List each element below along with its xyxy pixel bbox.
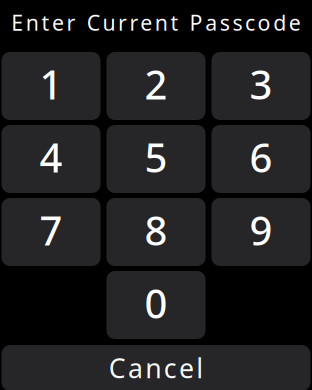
button[interactable]: 2 <box>106 52 205 120</box>
staticText: 5 <box>144 130 167 184</box>
staticText: 0 <box>144 276 167 330</box>
staticText: 9 <box>249 203 272 257</box>
staticText: 4 <box>39 130 62 184</box>
button[interactable]: 1 <box>1 52 100 120</box>
staticText: 1 <box>39 57 62 111</box>
staticText: 6 <box>249 130 272 184</box>
button[interactable]: 6 <box>211 125 310 193</box>
button[interactable]: 8 <box>106 198 205 266</box>
button[interactable]: 4 <box>1 125 100 193</box>
button[interactable]: 3 <box>211 52 310 120</box>
staticText: Enter Current Passcode <box>11 8 301 37</box>
staticText: 2 <box>144 57 167 111</box>
button[interactable]: Cancel <box>1 345 310 390</box>
button[interactable]: 5 <box>106 125 205 193</box>
button[interactable]: 7 <box>1 198 100 266</box>
staticText: Cancel <box>109 350 203 386</box>
staticText: 3 <box>249 57 272 111</box>
staticText: 8 <box>144 203 167 257</box>
button[interactable]: 0 <box>106 271 205 339</box>
staticText: 7 <box>39 203 62 257</box>
button[interactable]: 9 <box>211 198 310 266</box>
